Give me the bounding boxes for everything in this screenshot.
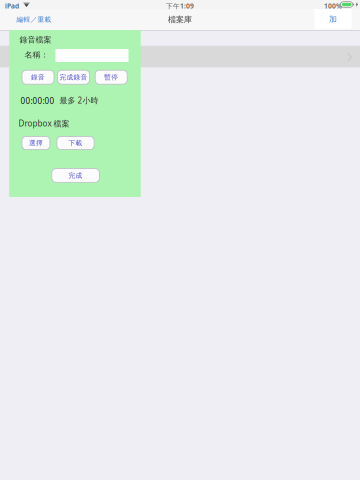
button[interactable]: 完成 — [52, 169, 99, 182]
staticText: Dropbox 檔案 — [18, 118, 69, 129]
staticText: iPad — [5, 2, 19, 10]
staticText: 錄音檔案 — [19, 35, 51, 45]
button[interactable]: 暫停 — [95, 70, 127, 84]
staticText: 名稱： — [24, 50, 48, 60]
staticText: 完成 — [69, 171, 83, 180]
button[interactable]: 加 — [314, 9, 351, 29]
button[interactable]: 下載 — [57, 136, 94, 150]
staticText: 完成錄音 — [59, 73, 87, 81]
staticText: 選擇 — [29, 139, 43, 147]
staticText: 下午1:09 — [166, 2, 194, 10]
staticText: 編輯／重載 — [16, 15, 51, 24]
button[interactable]: 選擇 — [22, 136, 50, 150]
staticText: 暫停 — [104, 73, 118, 81]
staticText: 最多 2小時 — [59, 95, 98, 106]
staticText: 錄音 — [31, 73, 45, 81]
button[interactable]: 完成錄音 — [57, 70, 89, 84]
staticText: 00:00:00 — [20, 95, 54, 106]
button[interactable]: 錄音 — [22, 70, 54, 84]
staticText: 下載 — [68, 139, 82, 147]
staticText: 100% — [324, 2, 342, 10]
button[interactable]: 編輯／重載 — [6, 9, 62, 30]
staticText: 加 — [329, 14, 337, 24]
staticText: 檔案庫 — [168, 15, 192, 24]
